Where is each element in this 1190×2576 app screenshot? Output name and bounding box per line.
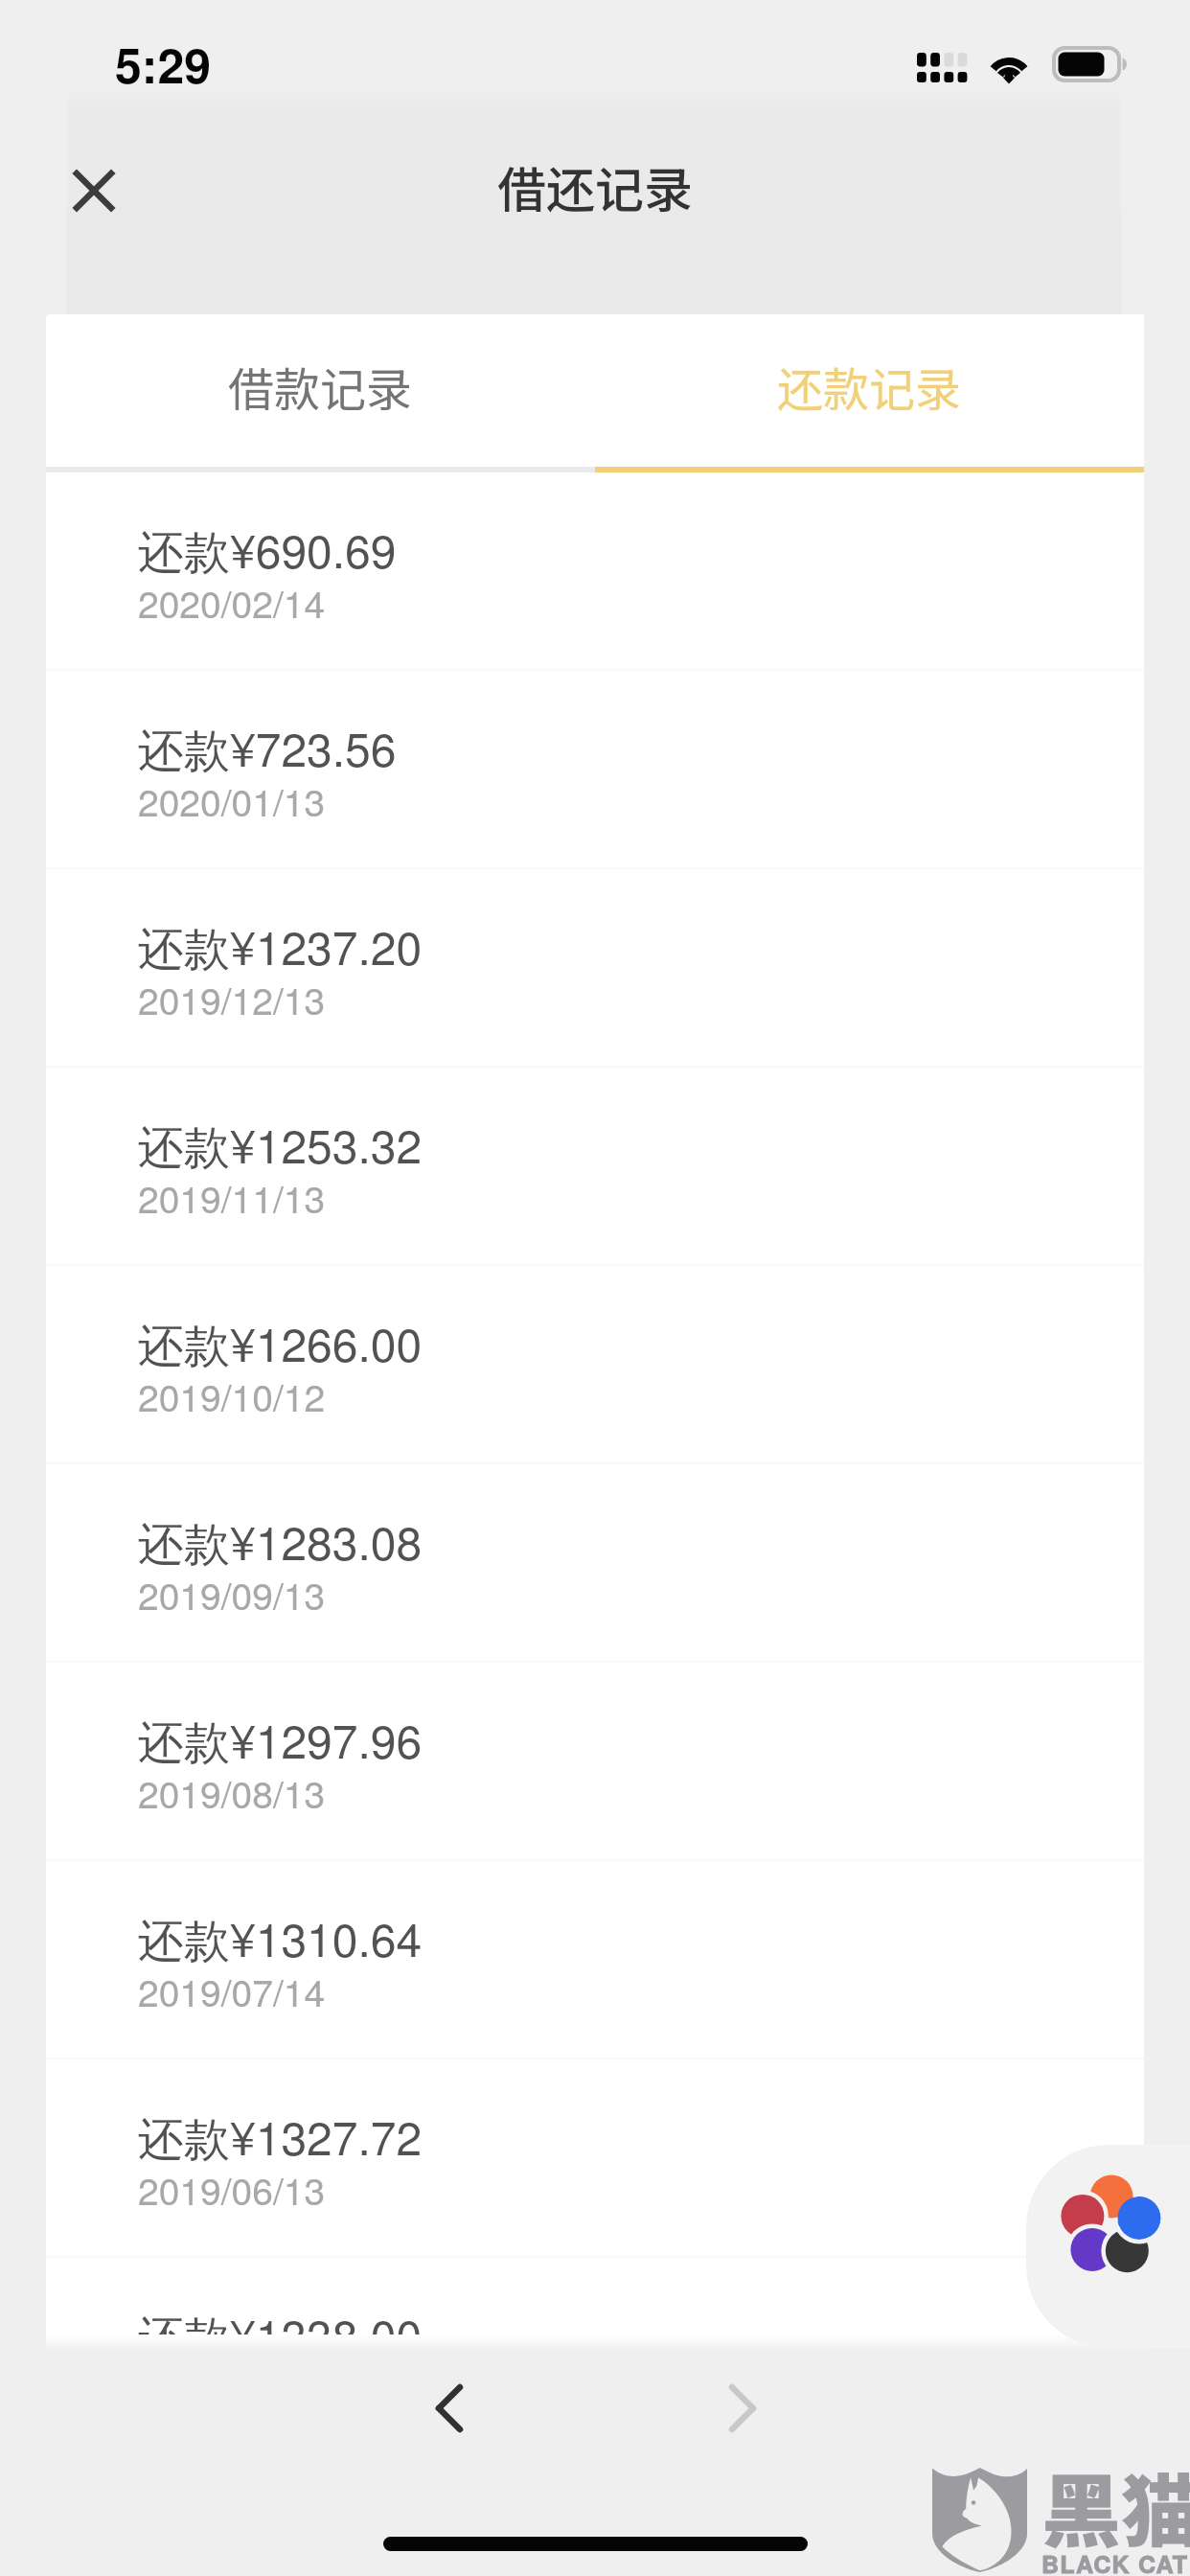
button[interactable]: Weibo (1026, 2145, 1190, 2348)
staticText: 2019/07/14 (138, 1964, 326, 2017)
button[interactable]: Close (51, 148, 137, 234)
staticText: 2020/01/13 (138, 773, 326, 827)
staticText: 还款¥1310.64 (138, 1904, 423, 1970)
staticText: 2019/06/13 (138, 2162, 326, 2216)
staticText: 还款¥1327.72 (138, 2103, 423, 2169)
button[interactable]: 还款¥1283.08 (46, 1464, 1144, 1663)
staticText: 5:29 (115, 30, 212, 99)
staticText: 2019/10/12 (138, 1368, 326, 1422)
staticText: 2019/12/13 (138, 972, 326, 1025)
staticText: 还款记录 (777, 353, 962, 420)
staticText: 借还记录 (0, 151, 1190, 222)
button[interactable]: 还款¥1297.96 (46, 1663, 1144, 1861)
button[interactable]: 还款¥1266.00 (46, 1266, 1144, 1464)
staticText: 还款¥1253.32 (138, 1111, 423, 1177)
button[interactable]: 还款¥1338.00 (46, 2258, 1144, 2340)
button[interactable]: 还款¥690.69 (46, 472, 1144, 671)
button[interactable]: 还款¥1237.20 (46, 869, 1144, 1068)
button[interactable]: 还款¥723.56 (46, 671, 1144, 869)
staticText: 2019/08/13 (138, 1765, 326, 1819)
staticText: 还款¥1283.08 (138, 1507, 423, 1574)
staticText: BLACK CAT (1041, 2546, 1189, 2576)
staticText: 借款记录 (228, 353, 413, 420)
staticText: 2020/02/14 (138, 575, 326, 629)
button[interactable]: Forward (699, 2365, 786, 2451)
staticText: 2019/11/13 (138, 1170, 326, 1224)
staticText: 还款¥1237.20 (138, 912, 423, 978)
button[interactable]: 还款¥1310.64 (46, 1861, 1144, 2059)
staticText: 还款¥1266.00 (138, 1309, 423, 1375)
button[interactable]: Back (406, 2365, 492, 2451)
staticText: 还款¥723.56 (138, 714, 397, 780)
staticText: 2019/09/13 (138, 1567, 326, 1621)
button[interactable]: 还款记录 (595, 314, 1144, 472)
staticText: 还款¥1297.96 (138, 1706, 423, 1772)
staticText: 还款¥690.69 (138, 516, 397, 582)
staticText: 黑猫 (1041, 2449, 1190, 2564)
button[interactable]: 借款记录 (46, 314, 595, 472)
button[interactable]: 还款¥1327.72 (46, 2059, 1144, 2258)
staticText: 还款¥1338.00 (138, 2301, 423, 2340)
button[interactable]: 还款¥1253.32 (46, 1068, 1144, 1266)
